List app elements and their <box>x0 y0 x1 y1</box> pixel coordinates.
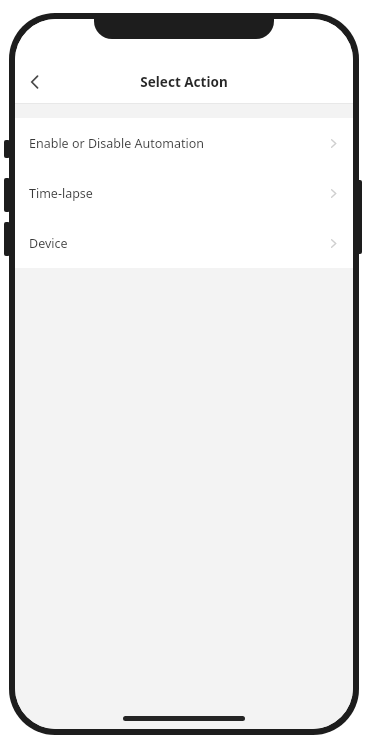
staticText: Time-lapse <box>29 185 328 202</box>
button[interactable]: Device <box>15 218 353 268</box>
button[interactable]: Enable or Disable Automation <box>15 118 353 168</box>
staticText: Enable or Disable Automation <box>29 135 328 152</box>
staticText: Device <box>29 235 328 252</box>
staticText: Select Action <box>15 73 353 91</box>
button[interactable]: Time-lapse <box>15 168 353 218</box>
button[interactable]: Back <box>15 62 55 102</box>
